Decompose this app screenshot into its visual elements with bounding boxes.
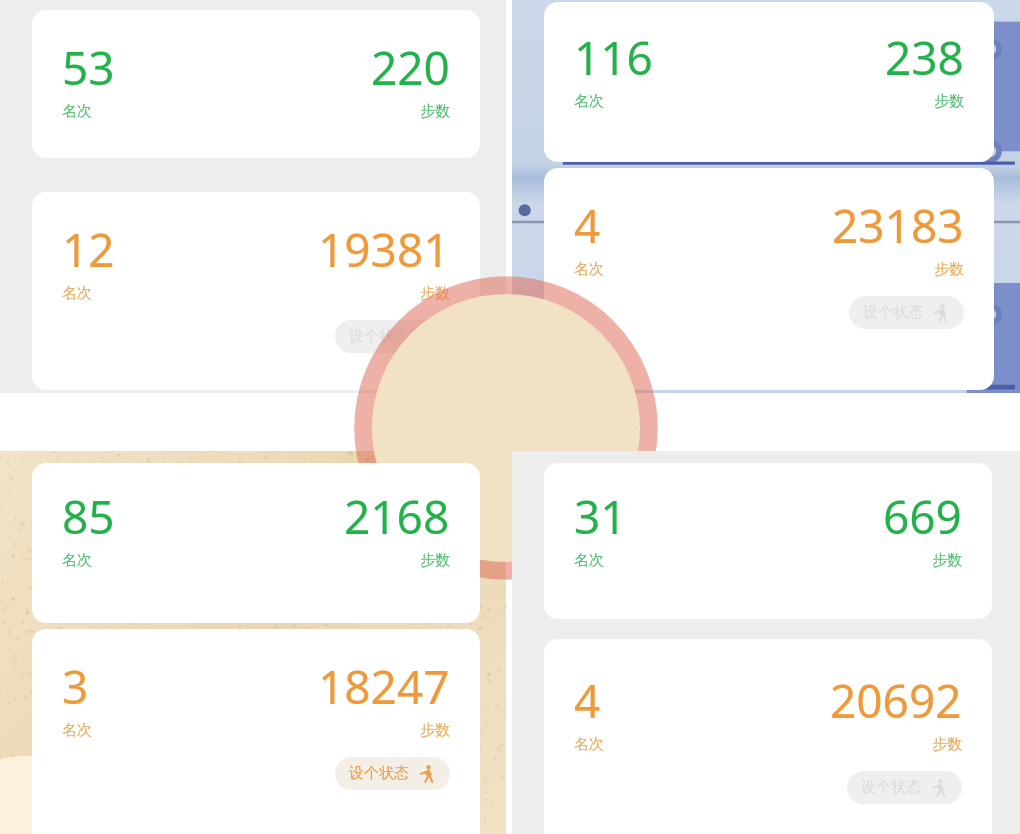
staticText: 设个状态 xyxy=(863,303,923,322)
staticText: 名次 xyxy=(62,551,92,570)
staticText: 步数 xyxy=(932,551,962,570)
staticText: 220 xyxy=(371,36,450,99)
button[interactable]: 31 xyxy=(544,463,992,619)
staticText: 步数 xyxy=(420,284,450,303)
staticText: 步数 xyxy=(420,721,450,740)
staticText: 设个状态 xyxy=(349,764,409,783)
staticText: 4 xyxy=(574,194,601,257)
staticText: 2168 xyxy=(344,485,450,548)
staticText: 12 xyxy=(62,218,115,281)
staticText: 步数 xyxy=(420,102,450,121)
staticText: 85 xyxy=(62,485,115,548)
button[interactable]: 85 xyxy=(32,463,480,623)
staticText: 3 xyxy=(62,655,89,718)
staticText: 238 xyxy=(885,26,964,89)
staticText: 669 xyxy=(883,485,962,548)
staticText: 名次 xyxy=(574,92,604,111)
button[interactable]: 设个状态 xyxy=(335,757,450,790)
staticText: 31 xyxy=(574,485,627,548)
staticText: 4 xyxy=(574,669,601,732)
button[interactable]: 12 xyxy=(32,192,480,390)
staticText: 名次 xyxy=(574,735,604,754)
staticText: 步数 xyxy=(420,551,450,570)
staticText: 名次 xyxy=(62,102,92,121)
button[interactable]: 设个状态 xyxy=(849,296,964,329)
staticText: 23183 xyxy=(832,194,964,257)
staticText: 名次 xyxy=(574,551,604,570)
button[interactable]: 设个状态 xyxy=(847,771,962,804)
button[interactable]: 116 xyxy=(544,2,994,162)
staticText: 设个状态 xyxy=(349,327,409,346)
staticText: 步数 xyxy=(932,735,962,754)
staticText: 名次 xyxy=(574,260,604,279)
button[interactable]: 4 xyxy=(544,639,992,834)
button[interactable]: 53 xyxy=(32,10,480,158)
staticText: 步数 xyxy=(934,92,964,111)
staticText: 设个状态 xyxy=(861,778,921,797)
staticText: 20692 xyxy=(830,669,962,732)
staticText: 116 xyxy=(574,26,653,89)
button[interactable]: 设个状态 xyxy=(335,320,450,353)
staticText: 18247 xyxy=(318,655,450,718)
staticText: 19381 xyxy=(318,218,450,281)
button[interactable]: 4 xyxy=(544,168,994,390)
staticText: 53 xyxy=(62,36,115,99)
staticText: 名次 xyxy=(62,721,92,740)
staticText: 步数 xyxy=(934,260,964,279)
staticText: 名次 xyxy=(62,284,92,303)
button[interactable]: 3 xyxy=(32,629,480,834)
